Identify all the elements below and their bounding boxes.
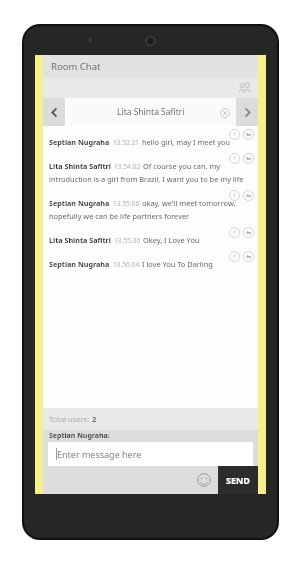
staticText: Total users:	[49, 414, 92, 424]
button[interactable]: Info	[43, 230, 258, 245]
button[interactable]: Reply	[242, 226, 255, 239]
button[interactable]: Info	[228, 250, 241, 263]
staticText: 13.52.21	[113, 138, 140, 147]
button[interactable]: Users	[236, 79, 254, 97]
button[interactable]: SEND	[218, 466, 258, 494]
button[interactable]: Reply	[242, 189, 255, 202]
button[interactable]: Reply	[242, 152, 255, 165]
staticText: 2	[92, 414, 97, 424]
button[interactable]: Info	[43, 193, 258, 221]
staticText: hopefully we can be life partners foreve…	[49, 211, 190, 221]
staticText: SEND	[226, 474, 250, 486]
button[interactable]: Room Chat	[43, 55, 258, 78]
staticText: Septian Nugraha:	[49, 431, 110, 441]
staticText: Septian Nugraha	[49, 137, 110, 147]
staticText: I love You To Darling	[142, 259, 213, 269]
button[interactable]: Previous	[43, 98, 65, 126]
button[interactable]: Info	[43, 156, 258, 184]
staticText: Lita Shinta Safitri	[49, 235, 111, 245]
button[interactable]: Close	[218, 106, 231, 119]
staticText: Septian Nugraha	[49, 198, 110, 208]
staticText: 13.56.04	[113, 260, 140, 269]
staticText: 13.55.06	[113, 199, 140, 208]
button[interactable]: Info	[228, 226, 241, 239]
staticText: okay, we'll meet tomorrow,	[142, 198, 236, 208]
staticText: Of course you can, my	[143, 161, 221, 171]
staticText: Septian Nugraha	[49, 259, 110, 269]
button[interactable]: Reply	[242, 128, 255, 141]
staticText: Room Chat	[51, 60, 101, 73]
button[interactable]: Info	[228, 128, 241, 141]
staticText: Enter message here	[57, 448, 142, 460]
staticText: introduction is a girl from Brazil, I wa…	[49, 174, 252, 184]
staticText: hello girl, may I meet you	[142, 137, 231, 147]
button[interactable]: Info	[43, 254, 258, 269]
staticText: Lita Shinta Safitri	[117, 106, 185, 118]
button[interactable]: Next	[236, 98, 258, 126]
staticText: 13.54.02	[114, 162, 141, 171]
button[interactable]: Reply	[242, 250, 255, 263]
staticText: Okey, I Love You	[143, 235, 200, 245]
button[interactable]: Info	[43, 132, 258, 147]
button[interactable]: Info	[228, 189, 241, 202]
button[interactable]: Enter message here	[48, 442, 253, 466]
button[interactable]: Info	[228, 152, 241, 165]
staticText: 13.55.36	[114, 236, 141, 245]
staticText: Lita Shinta Safitri	[49, 161, 111, 171]
button[interactable]: Lita Shinta Safitri	[65, 98, 236, 126]
button[interactable]: Emoji	[193, 469, 215, 491]
